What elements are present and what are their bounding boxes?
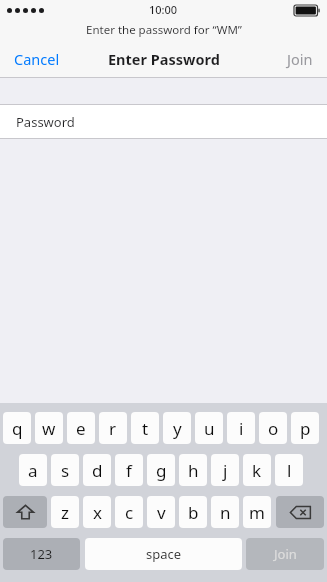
staticText: Cancel: [14, 49, 60, 69]
button[interactable]: p: [291, 412, 319, 444]
staticText: j: [223, 459, 228, 482]
staticText: u: [204, 417, 215, 440]
staticText: t: [142, 417, 149, 440]
button[interactable]: f: [115, 454, 143, 486]
staticText: h: [188, 459, 199, 482]
staticText: space: [146, 545, 182, 563]
staticText: g: [156, 459, 167, 482]
staticText: Join: [274, 545, 297, 563]
staticText: x: [93, 501, 102, 524]
button[interactable]: v: [147, 496, 175, 528]
staticText: f: [126, 459, 132, 482]
button[interactable]: Backspace: [276, 496, 324, 528]
staticText: s: [61, 459, 70, 482]
staticText: Enter the password for “WM”: [86, 22, 242, 38]
staticText: i: [239, 417, 244, 440]
button[interactable]: j: [211, 454, 239, 486]
button[interactable]: d: [83, 454, 111, 486]
staticText: w: [42, 417, 56, 440]
staticText: m: [249, 501, 265, 524]
staticText: Password: [16, 113, 75, 131]
staticText: Enter Password: [108, 49, 220, 69]
staticText: q: [12, 417, 23, 440]
staticText: p: [300, 417, 311, 440]
staticText: e: [76, 417, 86, 440]
button[interactable]: b: [179, 496, 207, 528]
button[interactable]: i: [227, 412, 255, 444]
button[interactable]: c: [115, 496, 143, 528]
button[interactable]: a: [19, 454, 47, 486]
button[interactable]: l: [275, 454, 303, 486]
button[interactable]: 123: [3, 538, 80, 570]
staticText: b: [188, 501, 199, 524]
button[interactable]: w: [35, 412, 63, 444]
staticText: a: [28, 459, 38, 482]
staticText: l: [287, 459, 292, 482]
button[interactable]: space: [85, 538, 242, 570]
staticText: 123: [30, 545, 53, 563]
button[interactable]: m: [243, 496, 271, 528]
staticText: y: [173, 417, 182, 440]
button[interactable]: k: [243, 454, 271, 486]
button[interactable]: q: [3, 412, 31, 444]
button[interactable]: Join: [273, 43, 327, 75]
button[interactable]: Shift: [3, 496, 47, 528]
staticText: c: [125, 501, 134, 524]
staticText: r: [109, 417, 117, 440]
staticText: Join: [287, 49, 313, 69]
staticText: d: [92, 459, 103, 482]
button[interactable]: s: [51, 454, 79, 486]
button[interactable]: t: [131, 412, 159, 444]
button[interactable]: Cancel: [0, 43, 74, 75]
button[interactable]: x: [83, 496, 111, 528]
button[interactable]: g: [147, 454, 175, 486]
button[interactable]: h: [179, 454, 207, 486]
button[interactable]: o: [259, 412, 287, 444]
staticText: o: [268, 417, 279, 440]
staticText: v: [157, 501, 166, 524]
staticText: z: [61, 501, 69, 524]
staticText: n: [220, 501, 231, 524]
button[interactable]: Password: [0, 105, 327, 138]
button[interactable]: e: [67, 412, 95, 444]
button[interactable]: n: [211, 496, 239, 528]
staticText: 10:00: [149, 2, 178, 17]
button[interactable]: u: [195, 412, 223, 444]
staticText: k: [252, 459, 262, 482]
button[interactable]: r: [99, 412, 127, 444]
button[interactable]: Join: [246, 538, 324, 570]
button[interactable]: z: [51, 496, 79, 528]
button[interactable]: y: [163, 412, 191, 444]
